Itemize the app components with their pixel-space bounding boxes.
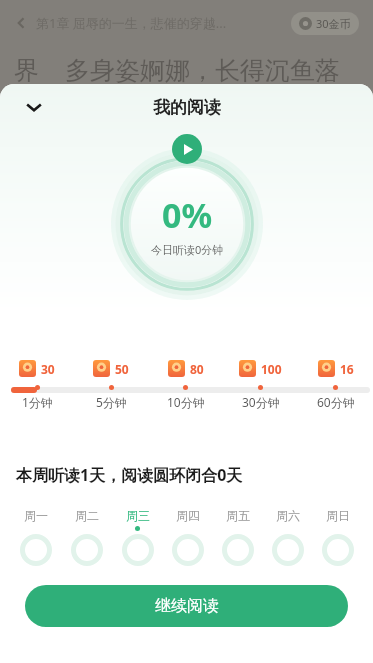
staticText: 我的阅读 [153, 97, 221, 118]
staticText: 50 [115, 361, 129, 377]
staticText: 16 [340, 361, 354, 377]
button[interactable]: Collapse [18, 91, 50, 123]
staticText: 60分钟 [317, 394, 355, 410]
button[interactable]: 周五 [213, 508, 263, 566]
button[interactable]: 周二 [61, 508, 112, 566]
staticText: 周三 [126, 508, 150, 523]
staticText: 30分钟 [242, 394, 280, 410]
button[interactable]: Play [172, 134, 202, 164]
staticText: 继续阅读 [155, 596, 219, 616]
staticText: 0% [162, 192, 213, 238]
button[interactable]: 50 [93, 360, 129, 377]
staticText: 周二 [75, 508, 99, 523]
staticText: 1分钟 [22, 394, 53, 410]
staticText: 周五 [226, 508, 250, 523]
staticText: 10分钟 [167, 394, 205, 410]
staticText: 周一 [24, 508, 48, 523]
staticText: 本周听读1天，阅读圆环闭合0天 [16, 464, 243, 486]
staticText: 100 [261, 361, 282, 377]
button[interactable]: 继续阅读 [25, 585, 348, 627]
button[interactable]: 30金币 [299, 16, 351, 31]
staticText: 今日听读0分钟 [151, 242, 224, 257]
button[interactable]: 周一 [10, 508, 61, 566]
staticText: 界 多身姿婀娜，长得沉鱼落 [14, 52, 341, 86]
staticText: 80 [190, 361, 204, 377]
staticText: 周日 [326, 508, 350, 523]
staticText: 30 [41, 361, 55, 377]
button[interactable]: 16 [318, 360, 354, 377]
button[interactable]: 周六 [263, 508, 313, 566]
button[interactable]: 周日 [313, 508, 363, 566]
button[interactable]: 30 [19, 360, 55, 377]
staticText: 第1章 屈辱的一生，悲催的穿越... [36, 14, 227, 32]
button[interactable]: 周三 [112, 508, 163, 566]
button[interactable]: 周四 [163, 508, 213, 566]
staticText: 5分钟 [96, 394, 127, 410]
staticText: 周六 [276, 508, 300, 523]
staticText: 周四 [176, 508, 200, 523]
staticText: 30金币 [316, 16, 351, 31]
button[interactable]: 100 [239, 360, 282, 377]
button[interactable]: 80 [168, 360, 204, 377]
